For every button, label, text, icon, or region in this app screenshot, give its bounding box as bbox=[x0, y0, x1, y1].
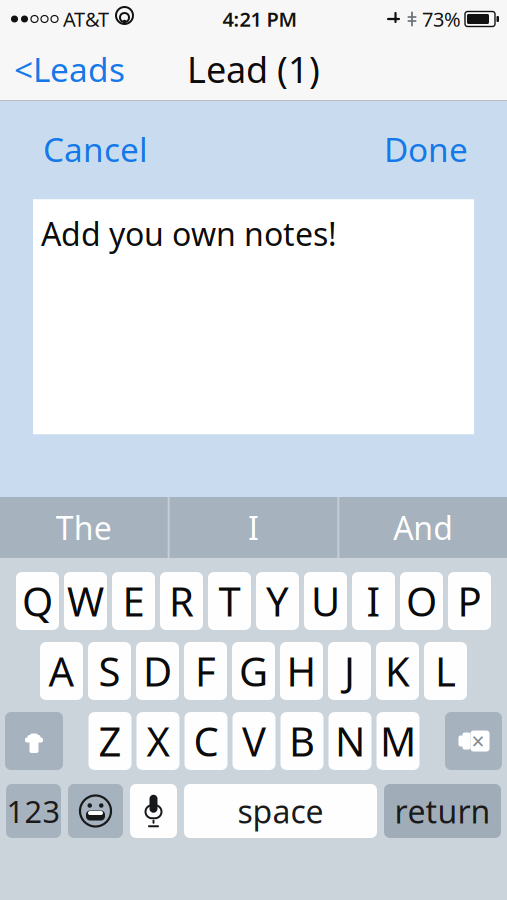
button[interactable]: Delete bbox=[445, 712, 502, 770]
staticText: × bbox=[471, 726, 484, 756]
button[interactable]: H bbox=[280, 642, 323, 700]
staticText: B bbox=[289, 714, 315, 767]
button[interactable]: U bbox=[304, 572, 347, 630]
button[interactable]: M bbox=[376, 712, 419, 770]
staticText: 73% bbox=[422, 6, 461, 32]
staticText: N bbox=[335, 714, 365, 767]
staticText: space bbox=[237, 790, 323, 832]
staticText: Y bbox=[266, 574, 289, 627]
button[interactable]: C bbox=[184, 712, 227, 770]
staticText: Lead (1) bbox=[187, 45, 320, 93]
staticText: 123 bbox=[6, 791, 60, 831]
button[interactable]: W bbox=[64, 572, 107, 630]
staticText: T bbox=[218, 574, 240, 627]
staticText: I bbox=[366, 574, 380, 627]
button[interactable]: Dictate bbox=[130, 784, 177, 838]
button[interactable]: E bbox=[112, 572, 155, 630]
staticText: C bbox=[193, 714, 218, 767]
staticText: X bbox=[146, 714, 169, 767]
staticText: G bbox=[239, 644, 268, 697]
staticText: Q bbox=[22, 574, 53, 627]
staticText: Done bbox=[384, 127, 468, 171]
staticText: 4:21 PM bbox=[222, 6, 297, 32]
button[interactable]: Z bbox=[88, 712, 131, 770]
button[interactable]: I bbox=[352, 572, 395, 630]
button[interactable]: K bbox=[376, 642, 419, 700]
button[interactable]: X bbox=[136, 712, 179, 770]
button[interactable]: R bbox=[160, 572, 203, 630]
button[interactable]: I bbox=[170, 497, 337, 558]
staticText: Add you own notes! bbox=[41, 212, 337, 255]
button[interactable]: The bbox=[0, 497, 168, 558]
staticText: K bbox=[385, 644, 410, 697]
button[interactable]: T bbox=[208, 572, 251, 630]
button[interactable]: space bbox=[184, 784, 377, 838]
button[interactable]: S bbox=[88, 642, 131, 700]
button[interactable]: Shift bbox=[5, 712, 63, 770]
button[interactable]: F bbox=[184, 642, 227, 700]
staticText: V bbox=[242, 714, 266, 767]
staticText: <Leads bbox=[14, 47, 125, 91]
button[interactable]: And bbox=[339, 497, 507, 558]
staticText: AT&T bbox=[63, 6, 109, 32]
staticText: P bbox=[457, 574, 481, 627]
button[interactable]: Emoji bbox=[68, 784, 123, 838]
staticText: D bbox=[143, 644, 172, 697]
staticText: W bbox=[67, 574, 104, 627]
button[interactable]: Q bbox=[16, 572, 59, 630]
staticText: R bbox=[169, 574, 194, 627]
staticText: I bbox=[248, 506, 259, 549]
button[interactable]: Done bbox=[374, 119, 478, 179]
staticText: J bbox=[344, 644, 355, 697]
staticText: Cancel bbox=[43, 127, 148, 171]
staticText: Z bbox=[98, 714, 121, 767]
staticText: return bbox=[394, 790, 490, 832]
staticText: L bbox=[435, 644, 456, 697]
button[interactable]: D bbox=[136, 642, 179, 700]
button[interactable]: P bbox=[448, 572, 491, 630]
staticText: F bbox=[195, 644, 216, 697]
button[interactable]: O bbox=[400, 572, 443, 630]
staticText: A bbox=[48, 644, 74, 697]
button[interactable]: J bbox=[328, 642, 371, 700]
button[interactable]: L bbox=[424, 642, 467, 700]
button[interactable]: N bbox=[328, 712, 371, 770]
button[interactable]: <Leads bbox=[0, 39, 125, 99]
staticText: E bbox=[122, 574, 144, 627]
button[interactable]: B bbox=[280, 712, 323, 770]
staticText: O bbox=[406, 574, 437, 627]
staticText: And bbox=[393, 506, 453, 549]
button[interactable]: Cancel bbox=[33, 119, 158, 179]
button[interactable]: 123 bbox=[6, 784, 61, 838]
button[interactable]: A bbox=[40, 642, 83, 700]
button[interactable]: G bbox=[232, 642, 275, 700]
staticText: U bbox=[311, 574, 340, 627]
staticText: The bbox=[56, 506, 112, 549]
staticText: H bbox=[286, 644, 316, 697]
button[interactable]: V bbox=[232, 712, 275, 770]
button[interactable]: Y bbox=[256, 572, 299, 630]
button[interactable]: return bbox=[384, 784, 501, 838]
staticText: M bbox=[380, 714, 416, 767]
staticText: S bbox=[98, 644, 120, 697]
